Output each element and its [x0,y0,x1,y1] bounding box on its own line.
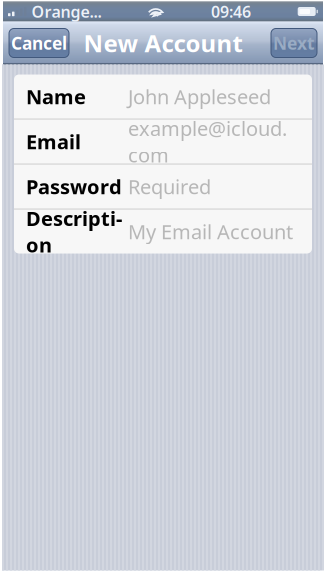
staticText: 09:46 [211,1,251,22]
staticText: Password [26,173,122,200]
button[interactable]: Description [14,209,312,253]
staticText: John Appleseed [128,83,271,110]
staticText: example@icloud.com [128,115,287,168]
button[interactable]: Next [271,28,317,57]
button[interactable]: Name [14,74,312,118]
staticText: Orange... [31,1,101,22]
staticText: Next [273,31,315,54]
staticText: New Account [83,27,242,59]
button[interactable]: Email [14,119,312,163]
button[interactable]: Password [14,164,312,208]
staticText: Cancel [11,31,67,54]
staticText: Name [26,83,86,110]
staticText: Required [128,173,211,200]
button[interactable]: Cancel [9,28,69,57]
staticText: Email [26,128,81,155]
staticText: Description [26,205,122,258]
staticText: My Email Account [128,218,293,245]
